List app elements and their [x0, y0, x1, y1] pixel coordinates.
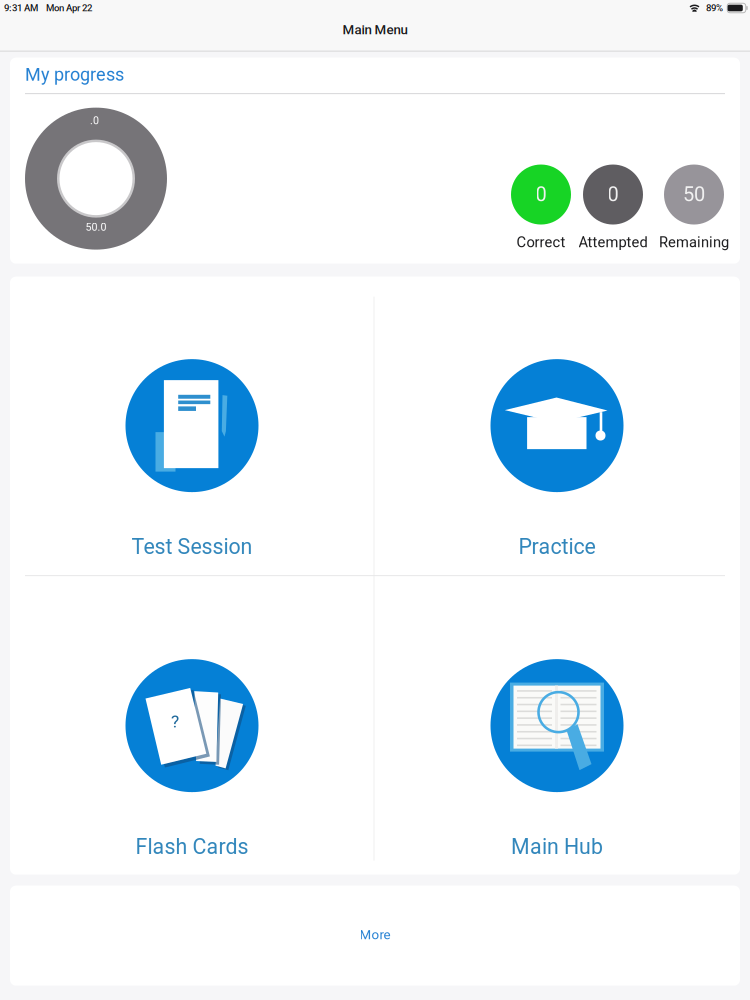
staticText: 0: [535, 183, 546, 206]
staticText: Attempted: [578, 233, 647, 251]
button[interactable]: ?: [10, 576, 374, 875]
staticText: Test Session: [131, 534, 252, 559]
staticText: Practice: [518, 534, 595, 559]
staticText: My progress: [25, 64, 124, 85]
staticText: 89%: [706, 2, 723, 14]
staticText: 50.0: [85, 221, 106, 233]
staticText: More: [359, 927, 390, 942]
staticText: Remaining: [659, 233, 729, 251]
button[interactable]: Practice: [375, 277, 739, 576]
staticText: .0: [90, 114, 99, 127]
staticText: Flash Cards: [135, 834, 248, 859]
staticText: Main Menu: [342, 22, 407, 38]
button[interactable]: Test Session: [10, 277, 374, 576]
staticText: 0: [607, 183, 618, 206]
staticText: 50: [683, 183, 705, 206]
button[interactable]: Main Hub: [375, 576, 739, 875]
staticText: Mon Apr 22: [46, 2, 92, 14]
staticText: ?: [171, 711, 179, 732]
staticText: Correct: [516, 233, 565, 251]
button[interactable]: More: [10, 886, 740, 986]
staticText: Main Hub: [511, 834, 603, 859]
staticText: 9:31 AM: [4, 2, 38, 14]
